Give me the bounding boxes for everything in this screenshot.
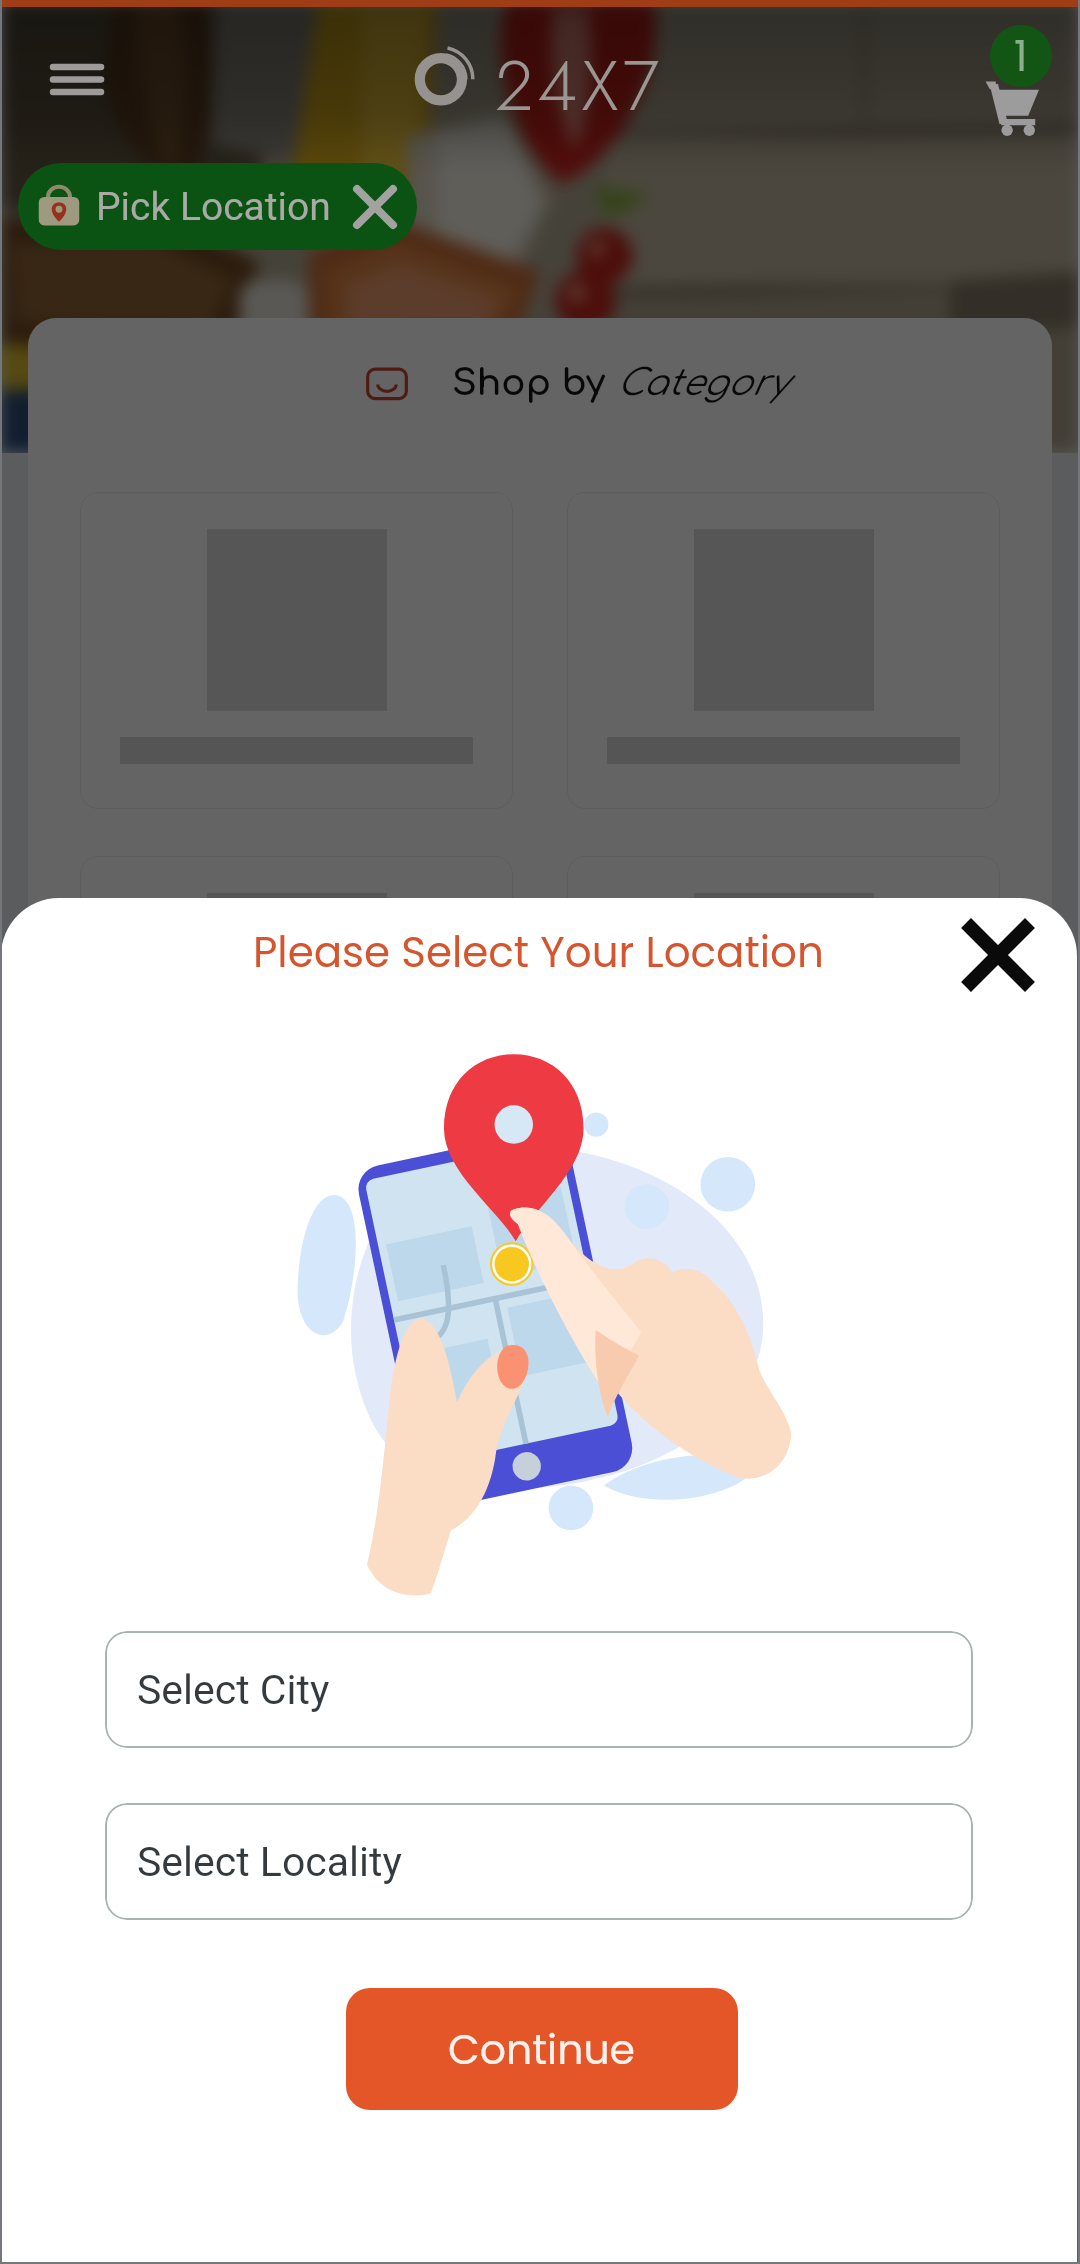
button[interactable]: Select City — [105, 1631, 973, 1748]
button[interactable] — [567, 856, 1000, 1173]
staticText: Pick Location — [96, 184, 331, 230]
button[interactable]: Menu — [29, 55, 124, 103]
button[interactable]: Pick Location — [18, 163, 417, 250]
button[interactable] — [80, 492, 513, 809]
staticText: Shop by — [452, 363, 616, 403]
staticText: 24X7 — [495, 35, 664, 136]
button[interactable]: Select Locality — [105, 1803, 973, 1920]
button[interactable]: Close — [955, 912, 1041, 998]
staticText: Please Select Your Location — [253, 923, 824, 982]
staticText: 1 — [1014, 27, 1028, 86]
button[interactable]: Cart — [975, 18, 1061, 140]
button[interactable] — [567, 492, 1000, 809]
button[interactable] — [80, 856, 513, 1173]
button[interactable]: Continue — [346, 1988, 738, 2110]
staticText: Continue — [448, 2021, 636, 2078]
staticText: Category — [616, 363, 788, 403]
staticText: Select City — [137, 1666, 330, 1714]
staticText: Select Locality — [137, 1838, 402, 1886]
